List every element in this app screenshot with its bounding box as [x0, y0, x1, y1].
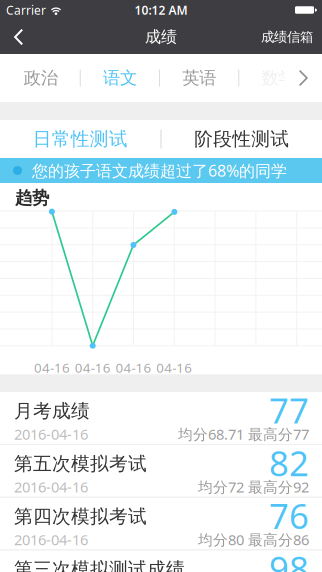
staticText: 10:12 AM: [134, 2, 187, 18]
staticText: 阶段性测试: [194, 127, 289, 150]
button[interactable]: 政治: [1, 54, 80, 102]
staticText: 月考成绩: [14, 399, 90, 422]
staticText: 成绩: [145, 27, 177, 47]
staticText: 2016-04-16: [14, 477, 88, 497]
button[interactable]: 数学: [239, 54, 317, 102]
button[interactable]: 阶段性测试: [161, 120, 322, 158]
button[interactable]: 98: [0, 550, 322, 572]
staticText: 日常性测试: [33, 127, 128, 150]
staticText: 英语: [182, 67, 216, 89]
button[interactable]: 语文: [81, 54, 159, 102]
staticText: 98: [269, 545, 309, 572]
staticText: 04-16: [34, 359, 70, 376]
staticText: 您的孩子语文成绩超过了68%的同学: [32, 160, 287, 181]
staticText: 均分72 最高分92: [198, 477, 309, 497]
staticText: 76: [269, 493, 309, 539]
staticText: Carrier: [6, 2, 46, 18]
staticText: 第五次模拟考试: [14, 452, 147, 475]
button[interactable]: 英语: [160, 54, 238, 102]
staticText: 数学: [261, 67, 295, 89]
button[interactable]: More subjects: [284, 54, 322, 102]
staticText: 04-16: [75, 359, 111, 376]
button[interactable]: 成绩信箱: [261, 20, 322, 54]
button[interactable]: 82: [0, 445, 322, 497]
staticText: 04-16: [156, 359, 192, 376]
staticText: 2016-04-16: [14, 424, 88, 444]
staticText: 77: [269, 387, 309, 433]
staticText: 语文: [103, 67, 137, 89]
staticText: 趋势: [15, 187, 49, 209]
staticText: 2016-04-16: [14, 530, 88, 549]
button[interactable]: 77: [0, 392, 322, 444]
staticText: 均分80 最高分86: [198, 530, 309, 549]
staticText: 82: [269, 440, 309, 486]
staticText: 04-16: [115, 359, 151, 376]
staticText: 成绩信箱: [261, 29, 313, 45]
button[interactable]: 日常性测试: [0, 120, 160, 158]
staticText: 均分68.71 最高分77: [178, 424, 309, 444]
staticText: 第三次模拟测试成绩: [14, 558, 185, 572]
button[interactable]: 76: [0, 498, 322, 550]
staticText: 政治: [24, 67, 58, 89]
staticText: 第四次模拟考试: [14, 505, 147, 528]
button[interactable]: Back: [0, 20, 35, 54]
